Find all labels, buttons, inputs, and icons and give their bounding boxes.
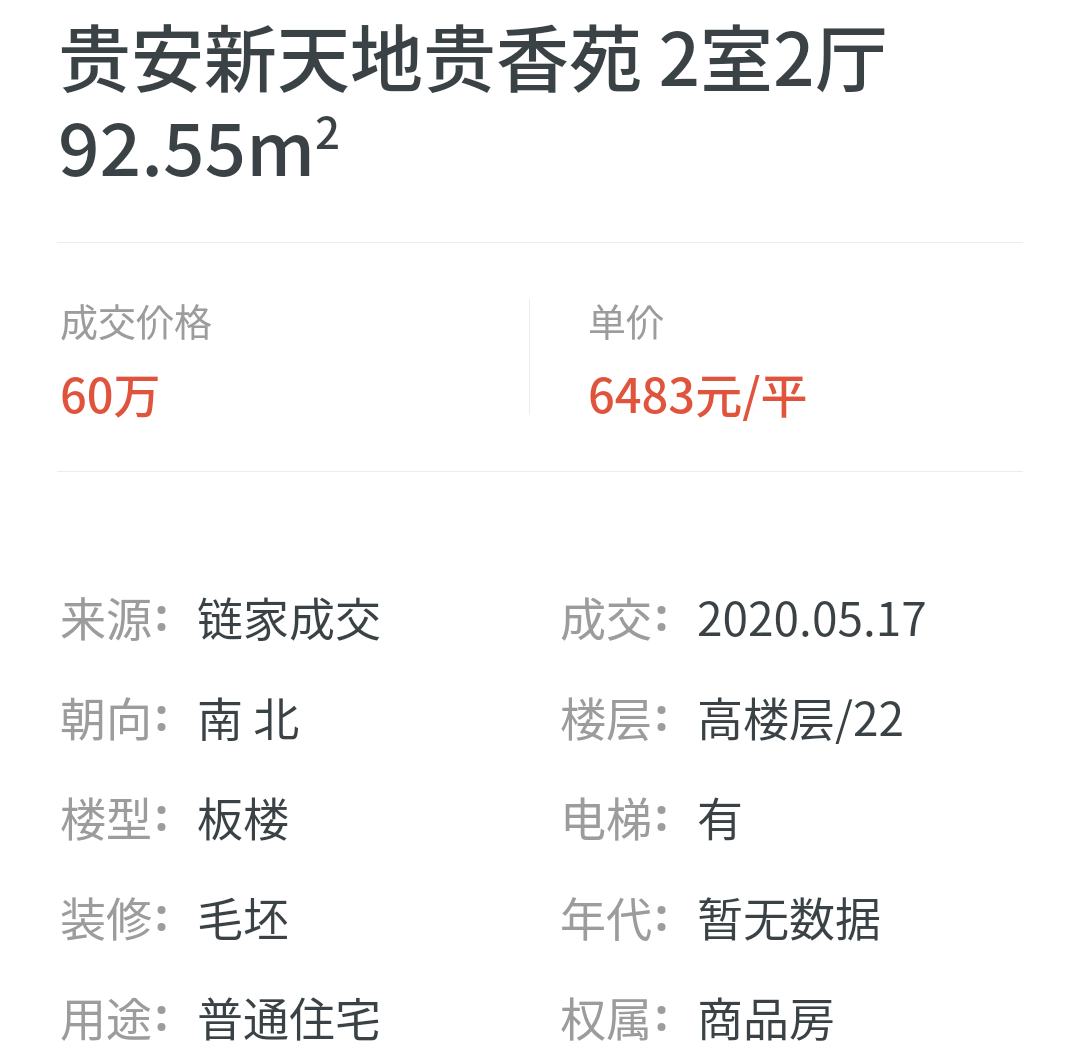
staticText: 成交 bbox=[560, 583, 652, 650]
staticText: 贵安新天地贵香苑 2室2厅 bbox=[58, 1, 888, 107]
button[interactable]: 电梯：有 bbox=[560, 773, 1030, 851]
button[interactable]: 装修：毛坯 bbox=[60, 873, 540, 951]
button[interactable]: 用途：普通住宅 bbox=[60, 973, 540, 1051]
staticText: 年代 bbox=[560, 883, 652, 950]
staticText: 来源 bbox=[60, 583, 152, 650]
staticText: 南 北 bbox=[197, 683, 300, 750]
staticText: 权属 bbox=[560, 983, 652, 1050]
staticText: 单价 bbox=[588, 292, 665, 347]
button[interactable]: 贵安新天地贵香苑 2室2厅 92.55平米 bbox=[57, 0, 1023, 210]
button[interactable]: 楼层：高楼层/22 bbox=[560, 673, 1030, 751]
button[interactable]: 权属：商品房 bbox=[560, 973, 1030, 1051]
button[interactable]: 成交价格 60万 bbox=[60, 280, 500, 430]
button[interactable]: 楼型：板楼 bbox=[60, 773, 540, 851]
staticText: 链家成交 bbox=[197, 583, 381, 650]
button[interactable]: 成交：2020.05.17 bbox=[560, 573, 1030, 651]
staticText: 6483元/平 bbox=[588, 358, 808, 426]
staticText: 普通住宅 bbox=[197, 983, 381, 1050]
staticText: 92.55m2 bbox=[58, 91, 341, 197]
staticText: 2020.05.17 bbox=[697, 583, 927, 650]
staticText: 成交价格 bbox=[60, 292, 213, 347]
staticText: 毛坯 bbox=[197, 883, 289, 950]
staticText: 暂无数据 bbox=[697, 883, 881, 950]
staticText: 高楼层/22 bbox=[697, 683, 905, 750]
staticText: 有 bbox=[697, 783, 743, 850]
button[interactable]: 单价 6483元/平 bbox=[588, 280, 1008, 430]
staticText: 商品房 bbox=[697, 983, 835, 1050]
staticText: 用途 bbox=[60, 983, 152, 1050]
staticText: 朝向 bbox=[60, 683, 152, 750]
button[interactable]: 朝向：南 北 bbox=[60, 673, 540, 751]
button[interactable]: 年代：暂无数据 bbox=[560, 873, 1030, 951]
button[interactable]: 来源：链家成交 bbox=[60, 573, 540, 651]
staticText: 板楼 bbox=[197, 783, 289, 850]
staticText: 电梯 bbox=[560, 783, 652, 850]
staticText: 60万 bbox=[60, 358, 161, 426]
staticText: 装修 bbox=[60, 883, 152, 950]
staticText: 楼型 bbox=[60, 783, 152, 850]
staticText: 楼层 bbox=[560, 683, 652, 750]
